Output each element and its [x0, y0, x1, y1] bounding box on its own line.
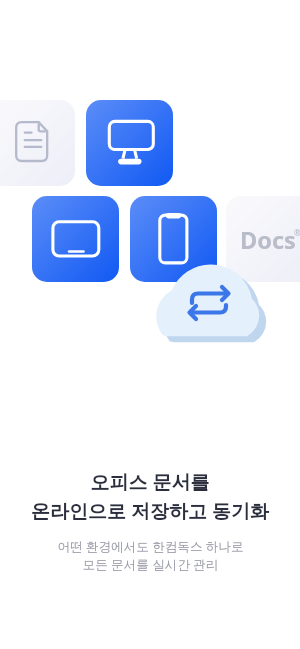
- staticText: Docs: [240, 224, 296, 256]
- staticText: 오피스 문서를 온라인으로 저장하고 동기화: [31, 469, 269, 523]
- staticText: ®: [294, 227, 300, 238]
- staticText: 어떤 환경에서도 한컴독스 하나로 모든 문서를 실시간 관리: [57, 538, 244, 573]
